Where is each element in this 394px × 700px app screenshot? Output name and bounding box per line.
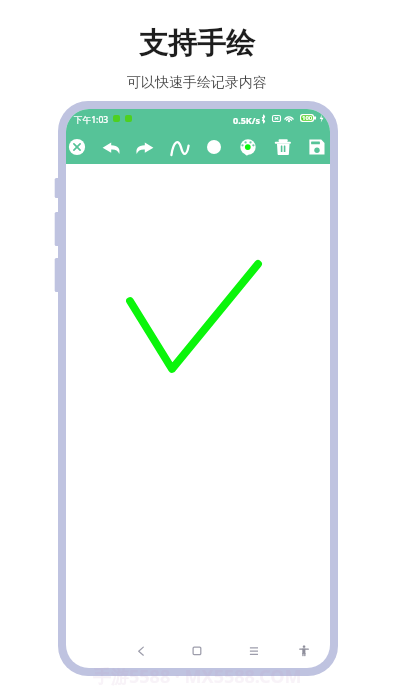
staticText: 下午1:03 [74, 114, 109, 126]
button[interactable]: Home [184, 638, 210, 664]
staticText: 100 [302, 114, 313, 122]
button[interactable]: Recent apps [241, 638, 267, 664]
button[interactable]: Close [66, 132, 92, 162]
button[interactable]: Color palette [233, 132, 263, 162]
staticText: 可以快速手绘记录内容 [127, 74, 267, 92]
button[interactable]: Brush size [199, 132, 229, 162]
staticText: 手游5588 · MX5588.COM [93, 664, 302, 689]
staticText: 支持手绘 [139, 25, 255, 62]
button[interactable]: Back [128, 638, 154, 664]
button[interactable]: Smooth curve [165, 132, 195, 162]
button[interactable]: Accessibility [291, 638, 317, 664]
staticText: 0.5K/s [233, 114, 261, 126]
button[interactable]: Delete [268, 132, 298, 162]
button[interactable]: Redo [130, 132, 160, 162]
button[interactable]: Undo [96, 132, 126, 162]
button[interactable]: Save [302, 132, 330, 162]
